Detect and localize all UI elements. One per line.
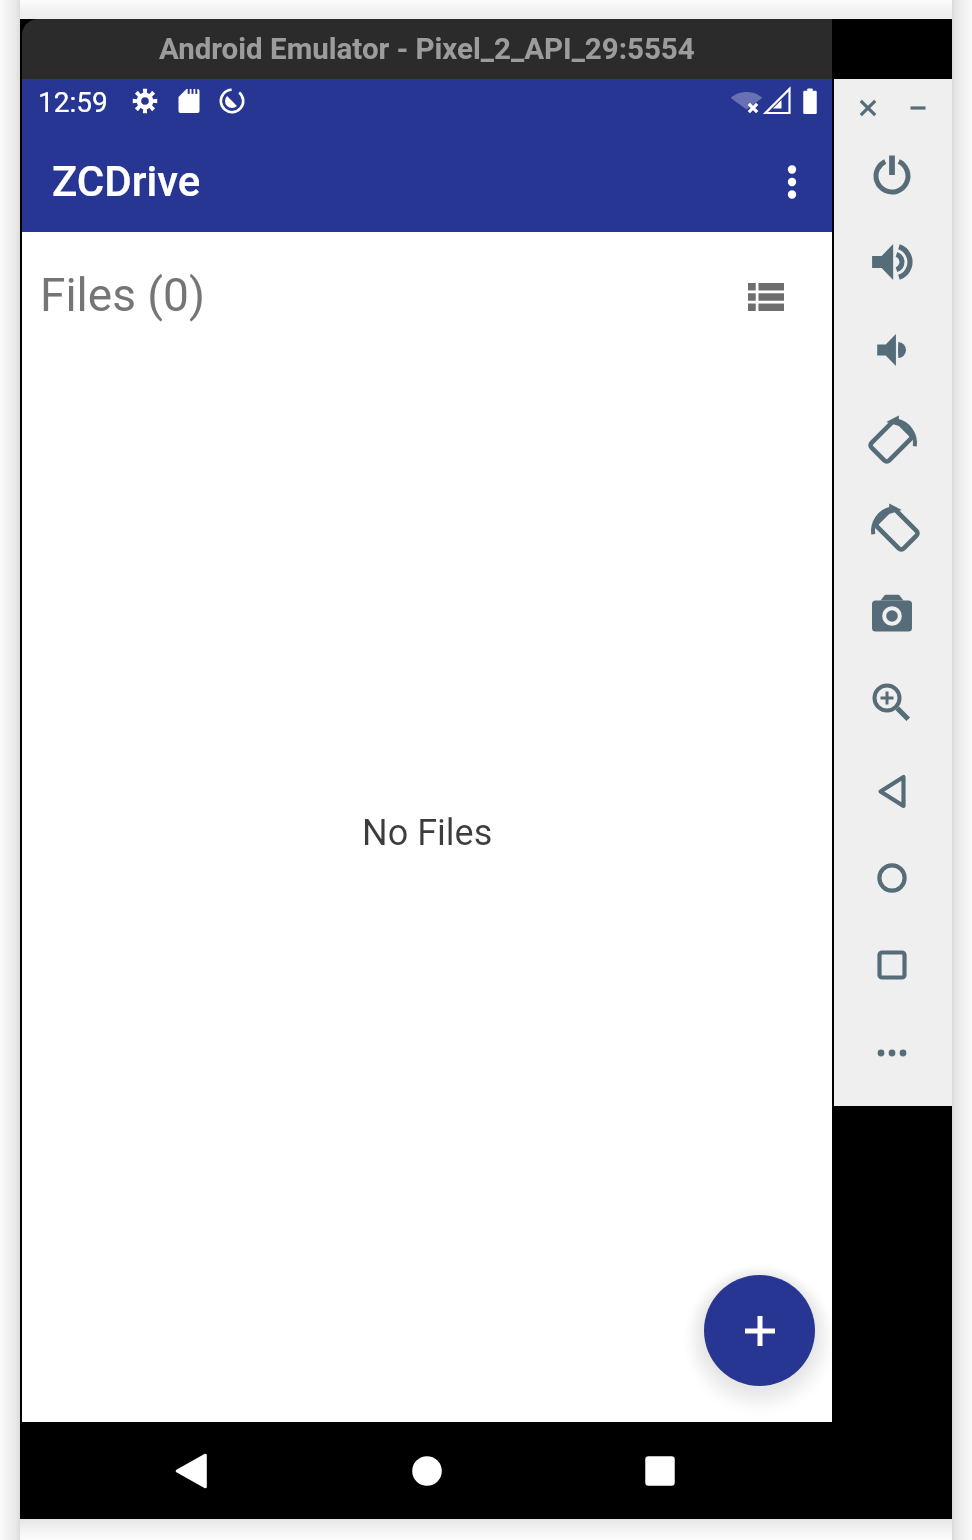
button[interactable]: Volume up <box>864 234 920 290</box>
staticText: Android Emulator - Pixel_2_API_29:5554 <box>159 32 695 67</box>
button[interactable]: Toggle list view <box>734 263 798 327</box>
button[interactable]: Rotate right <box>864 498 920 554</box>
staticText: 12:59 <box>38 86 108 119</box>
button[interactable]: Home <box>864 850 920 906</box>
button[interactable]: Back <box>151 1431 231 1511</box>
button[interactable]: Overview <box>864 937 920 993</box>
button[interactable]: More options <box>864 1025 920 1081</box>
button[interactable]: More options <box>756 146 828 218</box>
button[interactable]: Add file <box>704 1275 815 1386</box>
button[interactable]: Close <box>851 91 885 125</box>
button[interactable]: Recents <box>620 1431 700 1511</box>
button[interactable]: Volume down <box>864 322 920 378</box>
button[interactable]: Rotate left <box>864 410 920 466</box>
button[interactable]: Home <box>387 1431 467 1511</box>
button[interactable]: Take screenshot <box>864 584 920 640</box>
button[interactable]: Back <box>864 762 920 818</box>
staticText: ZCDrive <box>52 157 201 206</box>
staticText: No Files <box>362 812 493 854</box>
button[interactable]: Zoom <box>864 673 920 729</box>
button[interactable]: Power <box>864 146 920 202</box>
staticText: Files (0) <box>40 268 205 322</box>
button[interactable]: Minimize <box>901 91 935 125</box>
